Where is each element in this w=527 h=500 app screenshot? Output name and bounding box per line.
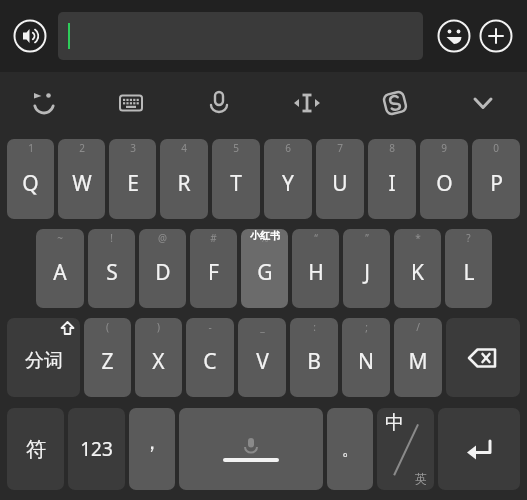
button[interactable]: Search [351, 72, 439, 134]
staticText: 8 [389, 141, 395, 155]
button[interactable]: Backspace [446, 318, 520, 397]
button[interactable]: Keyboard layout [87, 72, 175, 134]
staticText: 123 [80, 436, 113, 462]
button[interactable]: - [186, 318, 234, 397]
staticText: V [256, 347, 269, 376]
staticText: : [313, 320, 316, 334]
button[interactable]: Emoji [435, 17, 473, 55]
staticText: 5 [233, 141, 239, 155]
staticText: # [210, 231, 217, 245]
staticText: 7 [337, 141, 343, 155]
button[interactable]: # [190, 229, 237, 308]
staticText: @ [158, 231, 167, 245]
staticText: 1 [28, 141, 34, 155]
staticText: _ [260, 320, 265, 334]
staticText: % [260, 231, 269, 245]
staticText: 分词 [25, 349, 63, 373]
button[interactable]: Numbers [68, 408, 125, 490]
staticText: 英 [415, 471, 427, 486]
button[interactable]: 6 [264, 139, 312, 219]
staticText: 9 [441, 141, 447, 155]
button[interactable]: Space [179, 408, 323, 490]
staticText: ? [466, 231, 471, 245]
staticText: 。 [342, 439, 359, 460]
staticText: C [203, 347, 217, 376]
staticText: * [415, 231, 421, 245]
staticText: D [155, 258, 171, 287]
button[interactable]: _ [238, 318, 286, 397]
staticText: S [106, 258, 118, 287]
button[interactable]: 3 [109, 139, 156, 219]
staticText: J [364, 258, 370, 287]
staticText: - [208, 320, 212, 334]
button[interactable]: Symbols [7, 408, 64, 490]
staticText: L [463, 258, 475, 287]
button[interactable]: 7 [316, 139, 364, 219]
staticText: 小红书 [250, 229, 280, 242]
button[interactable]: Enter [438, 408, 520, 490]
button[interactable]: 4 [160, 139, 208, 219]
staticText: “ [314, 231, 318, 245]
button[interactable]: ( [84, 318, 131, 397]
button[interactable]: : [290, 318, 338, 397]
staticText: B [307, 347, 321, 376]
button[interactable]: ! [88, 229, 135, 308]
button[interactable]: Period [327, 408, 373, 490]
button[interactable]: ) [135, 318, 182, 397]
button[interactable]: 1 [7, 139, 54, 219]
staticText: T [230, 169, 242, 198]
staticText: A [53, 258, 67, 287]
button[interactable]: ” [343, 229, 390, 308]
staticText: ， [142, 430, 162, 455]
staticText: X [152, 347, 165, 376]
staticText: P [490, 169, 503, 198]
staticText: ( [106, 320, 109, 334]
staticText: 2 [79, 141, 85, 155]
button[interactable]: ; [342, 318, 390, 397]
button[interactable]: Cursor control [263, 72, 351, 134]
staticText: K [411, 258, 424, 287]
button[interactable]: 8 [368, 139, 416, 219]
button[interactable]: Voice input [175, 72, 263, 134]
staticText: 4 [181, 141, 187, 155]
button[interactable]: Stickers [0, 72, 87, 134]
button[interactable]: ~ [36, 229, 84, 308]
staticText: / [416, 320, 420, 334]
staticText: O [436, 169, 453, 198]
button[interactable]: Chinese English toggle [377, 408, 434, 490]
staticText: Q [22, 169, 39, 198]
staticText: I [388, 169, 396, 198]
button[interactable]: Add [477, 17, 515, 55]
button[interactable]: * [394, 229, 441, 308]
button[interactable]: ? [445, 229, 492, 308]
staticText: Z [101, 347, 114, 376]
staticText: 3 [130, 141, 136, 155]
staticText: Y [282, 169, 294, 198]
button[interactable]: / [394, 318, 442, 397]
staticText: ” [365, 231, 369, 245]
button[interactable]: 9 [420, 139, 468, 219]
staticText: F [208, 258, 219, 287]
button[interactable]: 2 [58, 139, 105, 219]
button[interactable]: 0 [472, 139, 520, 219]
staticText: R [177, 169, 191, 198]
button[interactable]: Shift 分词 [7, 318, 80, 397]
button[interactable] [58, 12, 423, 60]
button[interactable]: @ [139, 229, 186, 308]
staticText: ~ [57, 231, 63, 245]
button[interactable]: Voice broadcast [12, 18, 48, 54]
button[interactable]: % [241, 229, 288, 308]
button[interactable]: Collapse keyboard [439, 72, 527, 134]
staticText: ) [157, 320, 160, 334]
staticText: N [358, 347, 374, 376]
staticText: ; [365, 320, 368, 334]
button[interactable]: 5 [212, 139, 260, 219]
staticText: 中 [385, 411, 404, 435]
staticText: M [408, 347, 428, 376]
staticText: E [127, 169, 139, 198]
staticText: 0 [493, 141, 499, 155]
button[interactable]: Comma [129, 408, 175, 490]
staticText: W [72, 169, 92, 198]
button[interactable]: “ [292, 229, 339, 308]
staticText: ! [110, 231, 113, 245]
